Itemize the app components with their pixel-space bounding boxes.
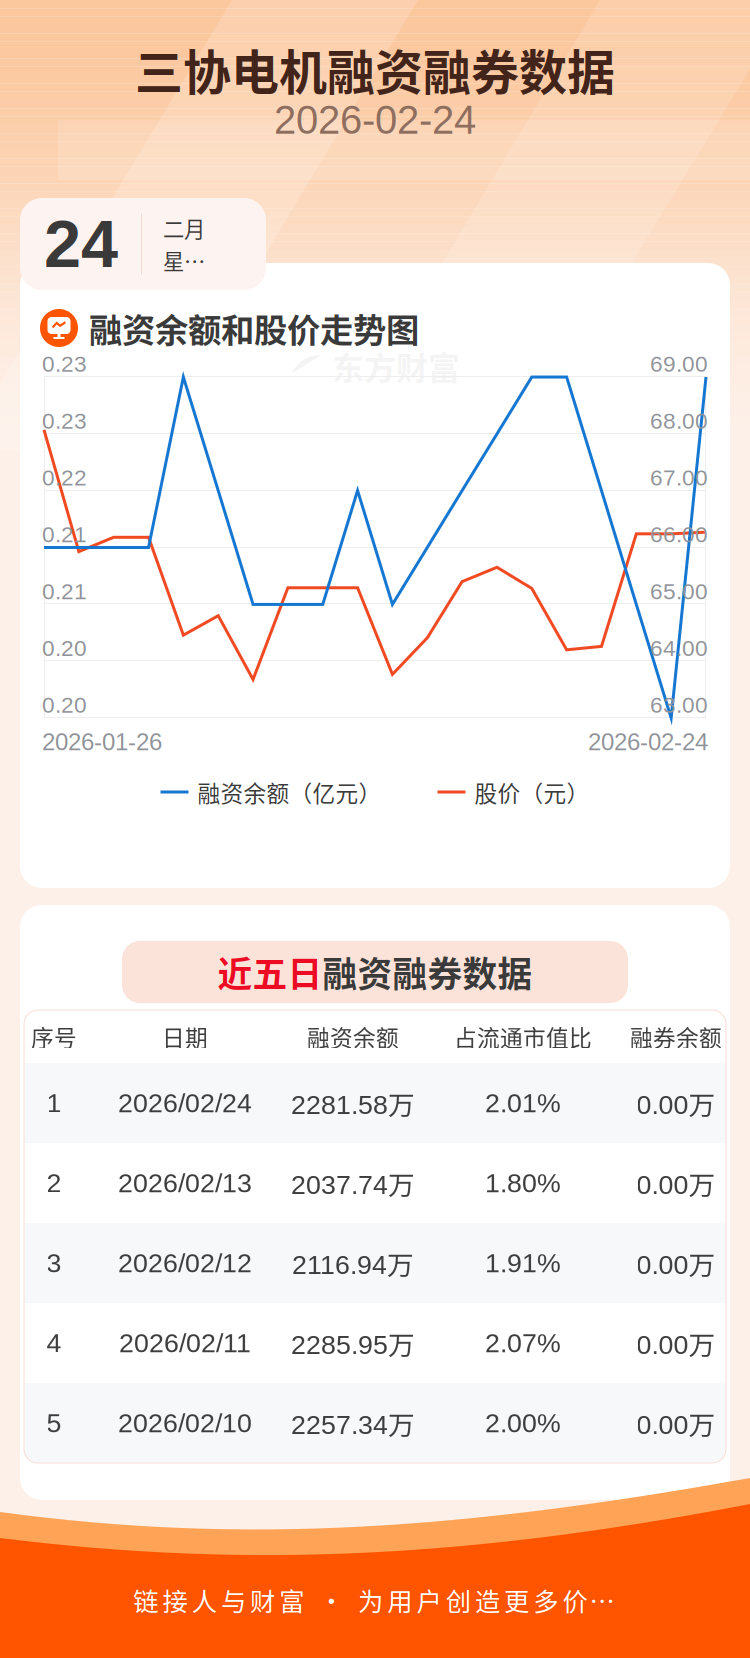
staticText: 2026/02/13: [118, 1168, 252, 1198]
staticText: 融资余额和股价走势图: [89, 304, 419, 352]
staticText: 2257.34万: [291, 1404, 415, 1442]
staticText: 3: [46, 1248, 61, 1278]
staticText: 2: [46, 1168, 61, 1198]
staticText: 近五日: [217, 947, 322, 997]
staticText: 2037.74万: [291, 1164, 415, 1202]
staticText: 67.00: [650, 465, 708, 490]
staticText: 5: [46, 1408, 61, 1438]
staticText: 0.00万: [636, 1404, 715, 1442]
staticText: 2116.94万: [292, 1244, 414, 1282]
staticText: 2.01%: [485, 1088, 561, 1118]
staticText: 融资余额: [307, 1020, 399, 1053]
staticText: 1.91%: [485, 1248, 561, 1278]
staticText: 0.21: [42, 522, 87, 547]
staticText: 69.00: [650, 351, 708, 377]
staticText: 0.00万: [636, 1084, 715, 1122]
staticText: 融资融券数据: [322, 947, 532, 997]
staticText: 2026-02-24: [588, 729, 708, 755]
staticText: 1.80%: [485, 1168, 561, 1198]
staticText: 24: [44, 207, 118, 281]
staticText: 0.23: [42, 351, 87, 377]
staticText: 0.00万: [636, 1164, 715, 1202]
staticText: 0.20: [42, 692, 87, 718]
staticText: 4: [46, 1328, 61, 1358]
staticText: 0.22: [42, 465, 87, 490]
staticText: 2285.95万: [291, 1324, 415, 1362]
staticText: 融券余额: [630, 1020, 722, 1053]
staticText: 序号: [31, 1020, 77, 1053]
staticText: 64.00: [650, 635, 708, 661]
staticText: 三协电机融资融券数据: [135, 34, 615, 104]
staticText: 0.00万: [636, 1324, 715, 1362]
staticText: 2.07%: [485, 1328, 561, 1358]
staticText: 2281.58万: [291, 1084, 415, 1122]
staticText: 0.23: [42, 408, 87, 433]
staticText: 2026-02-24: [274, 98, 476, 142]
staticText: 65.00: [650, 579, 708, 604]
staticText: 66.00: [650, 522, 708, 547]
staticText: 0.21: [42, 579, 87, 604]
staticText: 68.00: [650, 408, 708, 433]
staticText: 日期: [162, 1020, 208, 1053]
staticText: 0.20: [42, 635, 87, 661]
staticText: 链接人与财富 · 为用户创造更多价值: [133, 1582, 617, 1618]
staticText: 2026/02/24: [118, 1088, 252, 1118]
staticText: 股价（元）: [474, 776, 589, 808]
staticText: 2026/02/12: [118, 1248, 252, 1278]
staticText: 1: [46, 1088, 61, 1118]
staticText: 星期二: [163, 245, 223, 275]
staticText: 2026/02/10: [118, 1408, 252, 1438]
staticText: 0.00万: [636, 1244, 715, 1282]
staticText: 东方财富: [332, 343, 460, 389]
staticText: 2026/02/11: [119, 1328, 251, 1358]
staticText: 二月: [163, 213, 205, 243]
staticText: 63.00: [650, 692, 708, 718]
staticText: 占流通市值比: [454, 1020, 592, 1053]
staticText: 2.00%: [485, 1408, 561, 1438]
button[interactable]: 链接人与财富 · 为用户创造更多价值: [0, 1580, 750, 1620]
staticText: 融资余额（亿元）: [197, 776, 381, 808]
staticText: 2026-01-26: [42, 729, 162, 755]
